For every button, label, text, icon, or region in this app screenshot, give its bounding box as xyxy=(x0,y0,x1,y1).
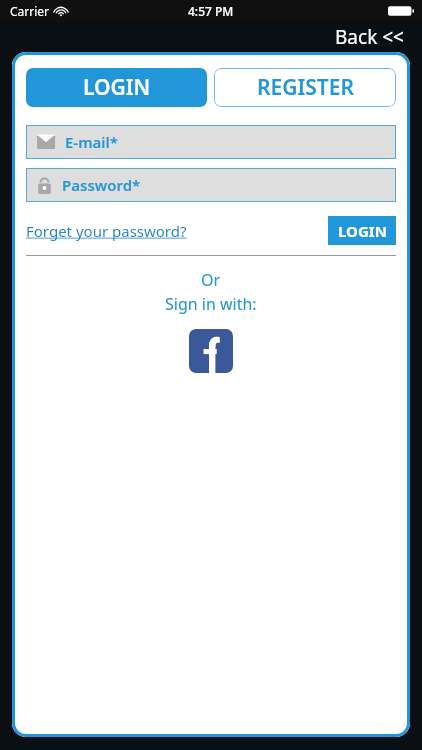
button[interactable]: LOGIN xyxy=(328,216,396,245)
button[interactable]: Password* xyxy=(26,168,396,202)
button[interactable]: Sign in with Facebook xyxy=(189,329,233,373)
staticText: REGISTER xyxy=(257,73,354,102)
staticText: Carrier xyxy=(10,3,50,19)
staticText: 4:57 PM xyxy=(188,3,234,19)
staticText: Or xyxy=(201,269,221,291)
staticText: E-mail* xyxy=(65,132,119,152)
button[interactable]: LOGIN xyxy=(26,68,207,107)
button[interactable]: REGISTER xyxy=(214,68,396,107)
staticText: Back << xyxy=(335,24,404,50)
staticText: Password* xyxy=(62,175,141,195)
button[interactable]: E-mail* xyxy=(26,125,396,159)
staticText: LOGIN xyxy=(83,73,151,102)
button[interactable]: Forget your password? xyxy=(26,217,187,245)
button[interactable]: Back << xyxy=(331,22,408,52)
staticText: LOGIN xyxy=(338,221,387,241)
staticText: Forget your password? xyxy=(26,221,187,241)
staticText: Sign in with: xyxy=(165,293,257,315)
